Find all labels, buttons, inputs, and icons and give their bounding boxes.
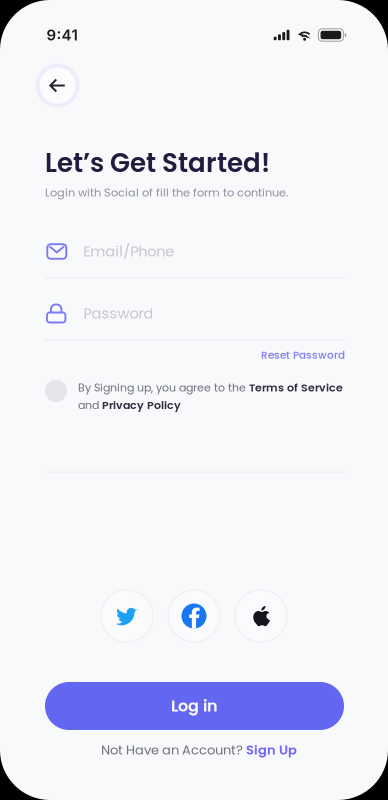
staticText: By Signing up, you agree to the — [78, 380, 249, 395]
button[interactable]: Not Have an Account? — [101, 739, 297, 761]
staticText: Sign Up — [246, 741, 297, 759]
staticText: Password — [83, 303, 153, 324]
staticText: Email/Phone — [83, 241, 174, 262]
staticText: Log in — [171, 695, 218, 717]
staticText: and — [78, 397, 102, 413]
button[interactable]: Continue with Twitter — [101, 590, 153, 642]
staticText: Terms of Service — [249, 380, 343, 395]
button[interactable]: Continue with Facebook — [168, 590, 220, 642]
button[interactable]: Agree to terms and privacy policy — [45, 380, 67, 402]
staticText: Privacy Policy — [102, 397, 181, 413]
staticText: Let’s Get Started! — [45, 145, 270, 181]
staticText: Not Have an Account? — [101, 741, 246, 759]
button[interactable]: Continue with Apple — [235, 590, 287, 642]
button[interactable]: Log in — [45, 682, 344, 730]
button[interactable]: Back — [35, 63, 79, 107]
staticText: 9:41 — [46, 26, 77, 44]
staticText: Reset Password — [261, 348, 345, 362]
button[interactable]: Reset Password — [45, 346, 345, 364]
staticText: Login with Social of fill the form to co… — [45, 185, 288, 200]
